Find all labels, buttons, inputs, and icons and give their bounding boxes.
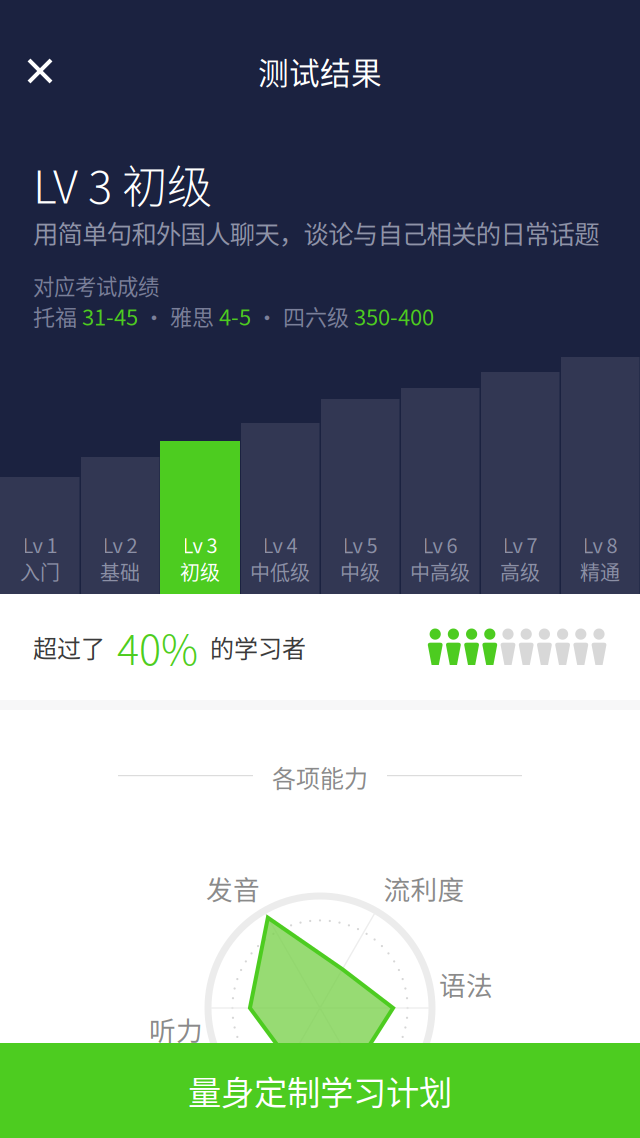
staticText: 各项能力: [272, 760, 368, 794]
staticText: Lv 1: [22, 530, 57, 559]
staticText: 托福: [33, 300, 77, 332]
button[interactable]: Close: [8, 39, 72, 103]
staticText: Lv 6: [422, 530, 457, 559]
staticText: 入门: [20, 557, 60, 586]
staticText: 中级: [340, 557, 380, 586]
staticText: 语法: [439, 965, 493, 1003]
staticText: 4-5: [214, 300, 251, 332]
staticText: LV 3 初级: [33, 151, 212, 217]
staticText: ·: [251, 300, 283, 332]
staticText: Lv 8: [582, 530, 617, 559]
staticText: Lv 7: [502, 530, 537, 559]
staticText: 量身定制学习计划: [188, 1066, 452, 1115]
staticText: Lv 2: [102, 530, 137, 559]
staticText: 中高级: [410, 557, 470, 586]
staticText: 初级: [180, 557, 220, 586]
staticText: 流利度: [383, 869, 464, 907]
staticText: 对应考试成绩: [33, 270, 159, 301]
staticText: 听力: [149, 1010, 203, 1048]
staticText: ·: [138, 300, 170, 332]
staticText: 高级: [500, 557, 540, 586]
staticText: 四六级: [283, 300, 349, 332]
staticText: 用简单句和外国人聊天，谈论与自己相关的日常话题: [33, 214, 599, 251]
staticText: 雅思: [170, 300, 214, 332]
staticText: 超过了: [33, 630, 105, 664]
staticText: Lv 3: [182, 530, 217, 559]
staticText: Lv 5: [342, 530, 377, 559]
staticText: 精通: [580, 557, 620, 586]
button[interactable]: 量身定制学习计划: [0, 1043, 640, 1138]
staticText: 中低级: [250, 557, 310, 586]
staticText: 基础: [100, 557, 140, 586]
staticText: Lv 4: [262, 530, 297, 559]
staticText: 31-45: [77, 300, 138, 332]
staticText: 测试结果: [258, 49, 382, 93]
staticText: 40%: [117, 617, 198, 677]
staticText: 的学习者: [210, 630, 306, 664]
staticText: 350-400: [349, 300, 434, 332]
staticText: 发音: [206, 869, 260, 907]
